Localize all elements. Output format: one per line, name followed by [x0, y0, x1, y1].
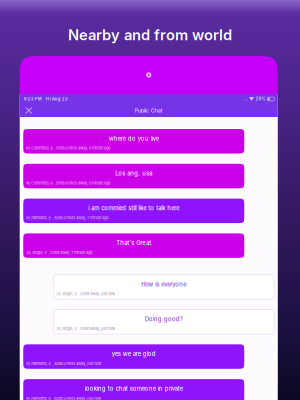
staticText: Nearby and from world	[68, 26, 232, 44]
staticText: That's Great	[116, 239, 151, 246]
button[interactable]: Close	[20, 104, 38, 117]
staticText: M, Partnered, ♀ , 8288.5 miles away, jus…	[26, 396, 101, 400]
staticText: Los ang. usa	[115, 170, 152, 177]
staticText: 9:23 PM Fri Aug 23	[24, 96, 68, 102]
staticText: where do you live	[109, 135, 159, 142]
button[interactable]: i am commied still like to talk here	[23, 199, 244, 223]
button[interactable]: Doing good?	[53, 309, 274, 334]
button[interactable]: Los ang. usa	[23, 164, 244, 188]
button[interactable]: where do you live	[23, 129, 244, 153]
button[interactable]: looking to chat someone in private	[23, 379, 244, 400]
staticText: ⌄	[245, 97, 248, 101]
staticText: 24, Single, ♀ , 0 feet away, 7 minute ag…	[26, 250, 92, 255]
staticText: 24, Single, ♀ , 0 feet away, just now	[56, 326, 115, 331]
button[interactable]: That's Great	[23, 233, 244, 258]
staticText: Doing good?	[145, 315, 183, 323]
staticText: 29%	[256, 96, 266, 102]
staticText: M, Commited, ♀ , 8768.6 miles away, 6 mi…	[26, 181, 110, 185]
staticText: M, Partnered, ♀ , 8288.5 miles away, jus…	[26, 361, 101, 366]
staticText: How is everyone	[141, 281, 186, 288]
staticText: 24, Single, ♀ , 0 feet away, just now	[56, 292, 115, 296]
staticText: yes we are glod	[112, 350, 156, 357]
button[interactable]: yes we are glod	[23, 344, 244, 369]
staticText: looking to chat someone in private	[85, 385, 183, 392]
staticText: M, Partnered, ♀ , 8288.5 miles away, 7 m…	[26, 216, 108, 220]
button[interactable]: How is everyone	[53, 275, 274, 299]
staticText: i am commied still like to talk here	[88, 205, 179, 212]
staticText: Public Chat	[135, 107, 163, 114]
staticText: M, Commited, ♀ , 8768.6 miles away, 6 mi…	[26, 146, 110, 150]
